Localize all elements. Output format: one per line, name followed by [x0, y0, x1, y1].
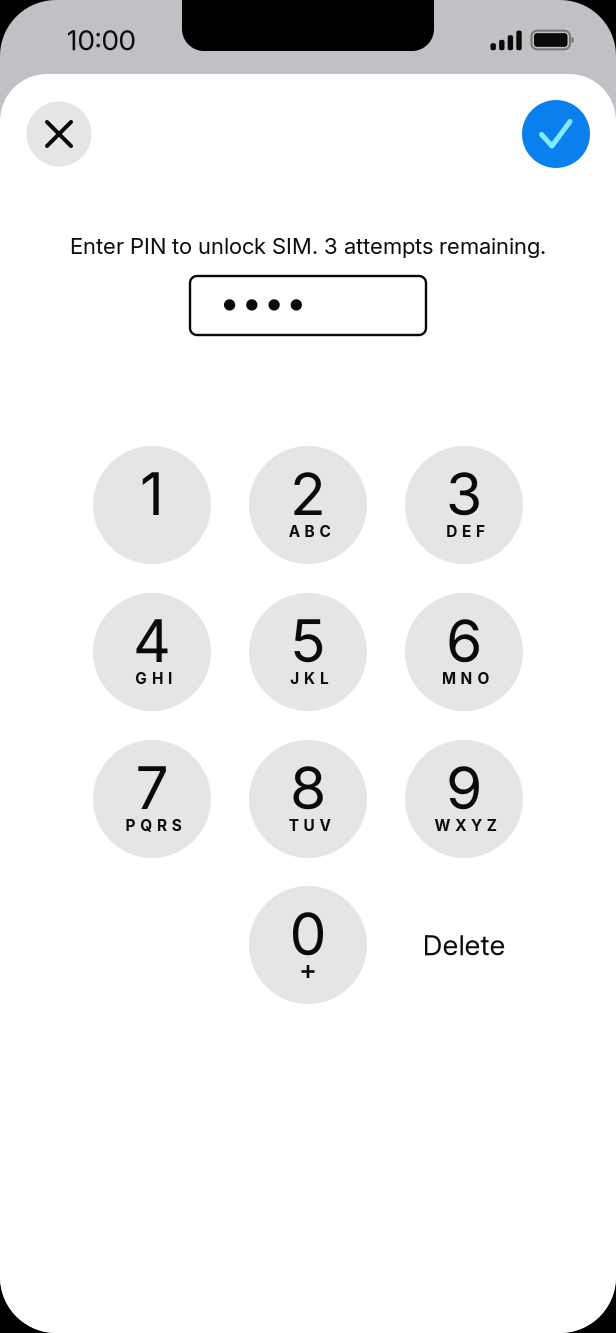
button[interactable]: 4: [93, 593, 211, 711]
button[interactable]: 7: [93, 740, 211, 858]
staticText: 7: [135, 752, 168, 823]
staticText: GHI: [135, 669, 172, 688]
staticText: TUV: [289, 816, 330, 835]
staticText: JKL: [290, 669, 329, 688]
staticText: 2: [290, 458, 326, 529]
staticText: WXYZ: [434, 816, 497, 835]
button[interactable]: 5: [249, 593, 367, 711]
button[interactable]: Close: [26, 101, 91, 166]
staticText: MNO: [442, 669, 489, 688]
button[interactable]: 8: [249, 740, 367, 858]
staticText: 1: [140, 458, 164, 529]
staticText: DEF: [446, 522, 485, 541]
staticText: Enter PIN to unlock SIM. 3 attempts rema…: [70, 233, 546, 259]
staticText: 0: [289, 898, 326, 969]
staticText: PQRS: [125, 816, 182, 835]
staticText: 4: [133, 605, 171, 676]
button[interactable]: 1: [93, 446, 211, 564]
button[interactable]: Done: [522, 100, 590, 168]
staticText: 3: [446, 458, 482, 529]
button[interactable]: 6: [405, 593, 523, 711]
staticText: 9: [446, 752, 482, 823]
staticText: 5: [290, 605, 326, 676]
button[interactable]: 3: [405, 446, 523, 564]
staticText: 10:00: [66, 23, 135, 57]
button[interactable]: 2: [249, 446, 367, 564]
staticText: ABC: [289, 522, 330, 541]
staticText: Delete: [422, 928, 505, 962]
button[interactable]: 0: [249, 886, 367, 1004]
staticText: 6: [446, 605, 482, 676]
button[interactable]: 9: [405, 740, 523, 858]
staticText: 8: [290, 752, 326, 823]
button[interactable]: Delete: [405, 886, 523, 1004]
